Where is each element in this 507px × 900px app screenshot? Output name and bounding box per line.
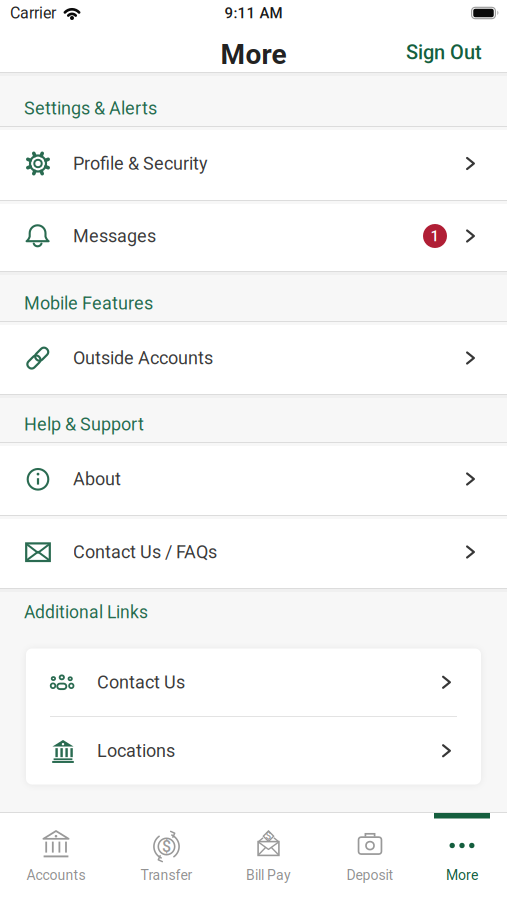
button[interactable]: About <box>0 443 507 515</box>
staticText: Contact Us / FAQs <box>73 541 217 563</box>
button[interactable]: Sign Out <box>406 40 482 64</box>
staticText: Outside Accounts <box>73 347 213 369</box>
staticText: Accounts <box>26 867 85 883</box>
staticText: Bill Pay <box>246 867 291 883</box>
button[interactable]: Profile & Security <box>0 127 507 200</box>
button[interactable]: Deposit <box>325 829 415 899</box>
staticText: Sign Out <box>406 41 482 64</box>
staticText: About <box>73 468 121 490</box>
button[interactable]: Contact Us / FAQs <box>0 516 507 588</box>
button[interactable]: Messages <box>0 201 507 271</box>
button[interactable]: More <box>417 829 507 899</box>
staticText: Mobile Features <box>24 293 153 314</box>
staticText: Carrier <box>10 4 56 22</box>
staticText: Locations <box>97 740 175 761</box>
button[interactable]: Contact Us <box>26 648 481 716</box>
button[interactable]: Locations <box>26 717 481 784</box>
staticText: Settings & Alerts <box>24 98 157 119</box>
button[interactable]: Outside Accounts <box>0 322 507 394</box>
staticText: $ <box>265 830 271 842</box>
staticText: More <box>220 38 286 71</box>
staticText: Help & Support <box>24 414 144 435</box>
staticText: Profile & Security <box>73 153 208 174</box>
staticText: Messages <box>73 225 156 247</box>
staticText: Contact Us <box>97 672 185 693</box>
staticText: More <box>446 867 478 883</box>
staticText: Deposit <box>346 867 393 883</box>
staticText: $ <box>162 837 171 856</box>
staticText: Transfer <box>140 867 192 883</box>
staticText: Additional Links <box>24 602 148 622</box>
staticText: 1 <box>430 227 439 245</box>
staticText: 9:11 AM <box>224 4 282 22</box>
button[interactable]: Accounts <box>11 829 101 899</box>
button[interactable]: $ <box>121 829 211 899</box>
button[interactable]: $ <box>223 829 313 899</box>
